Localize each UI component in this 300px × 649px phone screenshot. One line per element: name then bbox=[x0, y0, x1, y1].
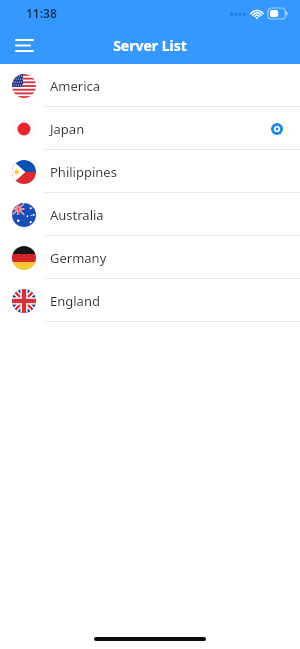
staticText: Philippines bbox=[50, 163, 268, 181]
button[interactable]: Japan bbox=[0, 107, 300, 150]
button[interactable]: Germany bbox=[0, 236, 300, 279]
staticText: Server List bbox=[113, 36, 187, 55]
staticText: Japan bbox=[50, 120, 268, 138]
button[interactable]: Australia bbox=[0, 193, 300, 236]
button[interactable]: Selected server bbox=[268, 120, 286, 138]
staticText: America bbox=[50, 77, 268, 95]
staticText: Australia bbox=[50, 206, 268, 224]
button[interactable]: Philippines bbox=[0, 150, 300, 193]
staticText: England bbox=[50, 292, 268, 310]
staticText: 11:38 bbox=[26, 5, 57, 21]
button[interactable]: Open navigation menu bbox=[8, 29, 40, 61]
button[interactable]: England bbox=[0, 279, 300, 322]
button[interactable]: America bbox=[0, 64, 300, 107]
staticText: Germany bbox=[50, 249, 268, 267]
